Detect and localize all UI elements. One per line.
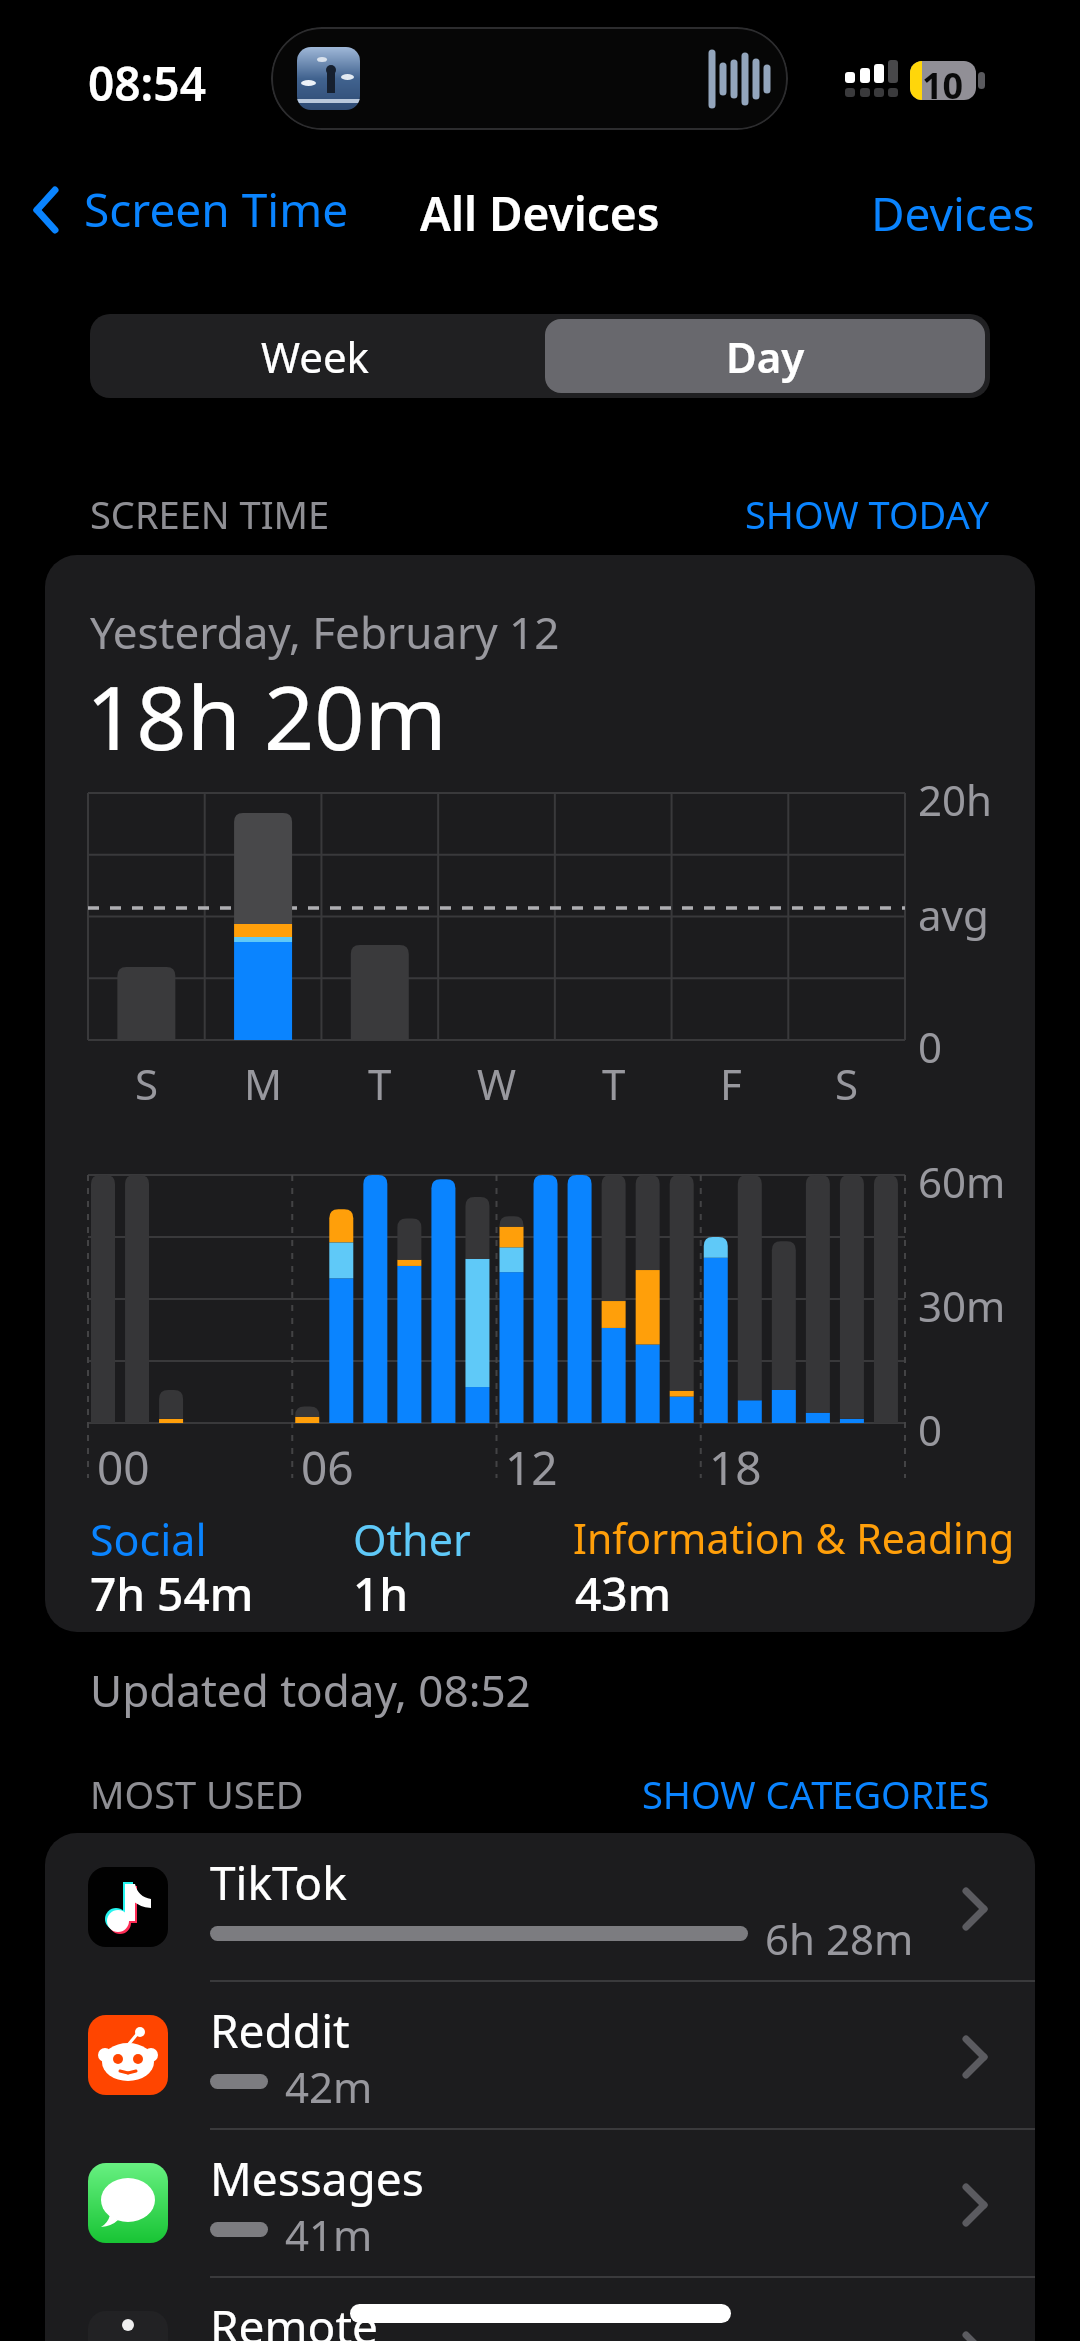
- staticText: F: [720, 1055, 742, 1112]
- staticText: 10: [922, 61, 964, 100]
- staticText: Messages: [210, 2147, 424, 2210]
- button[interactable]: Reddit: [45, 1981, 1035, 2129]
- staticText: All Devices: [420, 182, 660, 245]
- button[interactable]: TikTok: [45, 1833, 1035, 1981]
- button[interactable]: Devices: [871, 182, 1035, 245]
- button[interactable]: Day: [545, 319, 985, 393]
- button[interactable]: Messages: [45, 2129, 1035, 2277]
- staticText: Updated today, 08:52: [90, 1660, 531, 1720]
- staticText: TikTok: [210, 1851, 347, 1914]
- staticText: 06: [301, 1436, 354, 1499]
- staticText: S: [135, 1055, 159, 1112]
- button[interactable]: Remote: [45, 2277, 1035, 2341]
- staticText: Information & Reading: [573, 1510, 1015, 1566]
- staticText: S: [835, 1055, 859, 1112]
- button[interactable]: SHOW TODAY: [745, 488, 990, 540]
- staticText: T: [602, 1055, 626, 1112]
- staticText: Day: [726, 328, 805, 385]
- button[interactable]: Screen Time: [28, 178, 349, 241]
- staticText: 20h: [918, 771, 993, 828]
- staticText: Yesterday, February 12: [90, 602, 560, 662]
- staticText: 0: [918, 1401, 943, 1458]
- staticText: SHOW CATEGORIES: [642, 1768, 990, 1820]
- staticText: Social: [90, 1510, 207, 1569]
- button[interactable]: Week: [90, 314, 540, 398]
- staticText: 00: [97, 1436, 150, 1499]
- button[interactable]: SHOW CATEGORIES: [642, 1768, 990, 1820]
- staticText: Remote: [210, 2295, 378, 2341]
- staticText: 43m: [575, 1562, 672, 1625]
- staticText: Devices: [871, 182, 1035, 245]
- staticText: T: [368, 1055, 392, 1112]
- staticText: 18: [709, 1436, 762, 1499]
- staticText: M: [244, 1055, 283, 1112]
- staticText: 42m: [285, 2058, 373, 2115]
- staticText: 7h 54m: [90, 1562, 254, 1625]
- staticText: 1h: [353, 1562, 409, 1625]
- staticText: 08:54: [88, 52, 206, 115]
- staticText: 18h 20m: [86, 656, 447, 776]
- staticText: 41m: [285, 2206, 373, 2263]
- staticText: MOST USED: [90, 1768, 304, 1820]
- staticText: Week: [261, 328, 370, 385]
- staticText: 0: [918, 1018, 943, 1075]
- staticText: avg: [918, 886, 989, 943]
- staticText: Reddit: [210, 1999, 350, 2062]
- staticText: 6h 28m: [765, 1910, 914, 1967]
- staticText: W: [477, 1055, 517, 1112]
- staticText: Other: [353, 1510, 471, 1569]
- staticText: Screen Time: [84, 178, 349, 241]
- staticText: 30m: [918, 1277, 1006, 1334]
- staticText: 12: [505, 1436, 558, 1499]
- staticText: SHOW TODAY: [745, 488, 990, 540]
- staticText: SCREEN TIME: [90, 488, 330, 540]
- staticText: 60m: [918, 1153, 1006, 1210]
